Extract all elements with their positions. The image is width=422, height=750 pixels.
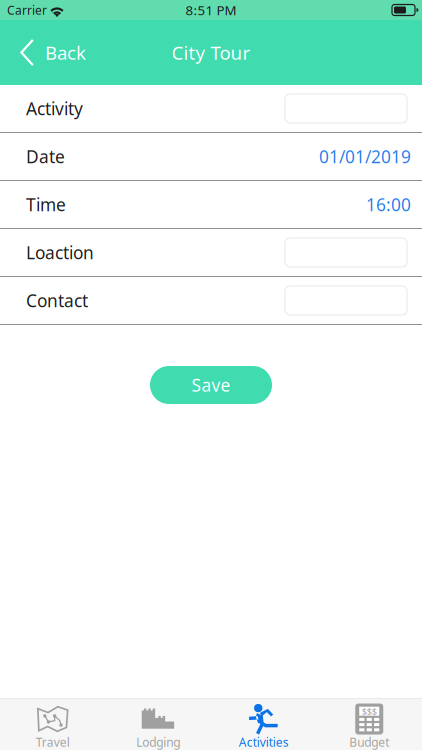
button[interactable]: Loaction: [0, 229, 422, 276]
button[interactable]: $$$: [316, 699, 422, 750]
staticText: Activities: [239, 734, 289, 750]
button[interactable]: Travel: [0, 699, 105, 750]
staticText: Budget: [349, 734, 389, 750]
button[interactable]: Contact: [0, 277, 422, 324]
staticText: Travel: [36, 734, 70, 750]
staticText: Back: [45, 40, 86, 65]
button[interactable]: Activities: [211, 699, 316, 750]
staticText: 8:51 PM: [185, 1, 236, 19]
staticText: Time: [26, 193, 66, 216]
staticText: 16:00: [366, 193, 411, 216]
button[interactable]: Activity: [0, 85, 422, 132]
staticText: Lodging: [136, 734, 180, 750]
button[interactable]: Save: [150, 366, 272, 404]
staticText: City Tour: [171, 40, 250, 65]
staticText: Date: [26, 145, 65, 168]
button[interactable]: Lodging: [105, 699, 211, 750]
staticText: Carrier: [7, 2, 47, 18]
button[interactable]: Time: [0, 181, 422, 228]
button[interactable]: Back: [0, 30, 100, 74]
staticText: $$$: [362, 705, 377, 717]
staticText: Loaction: [26, 241, 94, 264]
staticText: 01/01/2019: [319, 145, 411, 168]
button[interactable]: Date: [0, 133, 422, 180]
staticText: Contact: [26, 289, 88, 312]
staticText: Activity: [26, 97, 83, 120]
staticText: Save: [191, 373, 230, 396]
